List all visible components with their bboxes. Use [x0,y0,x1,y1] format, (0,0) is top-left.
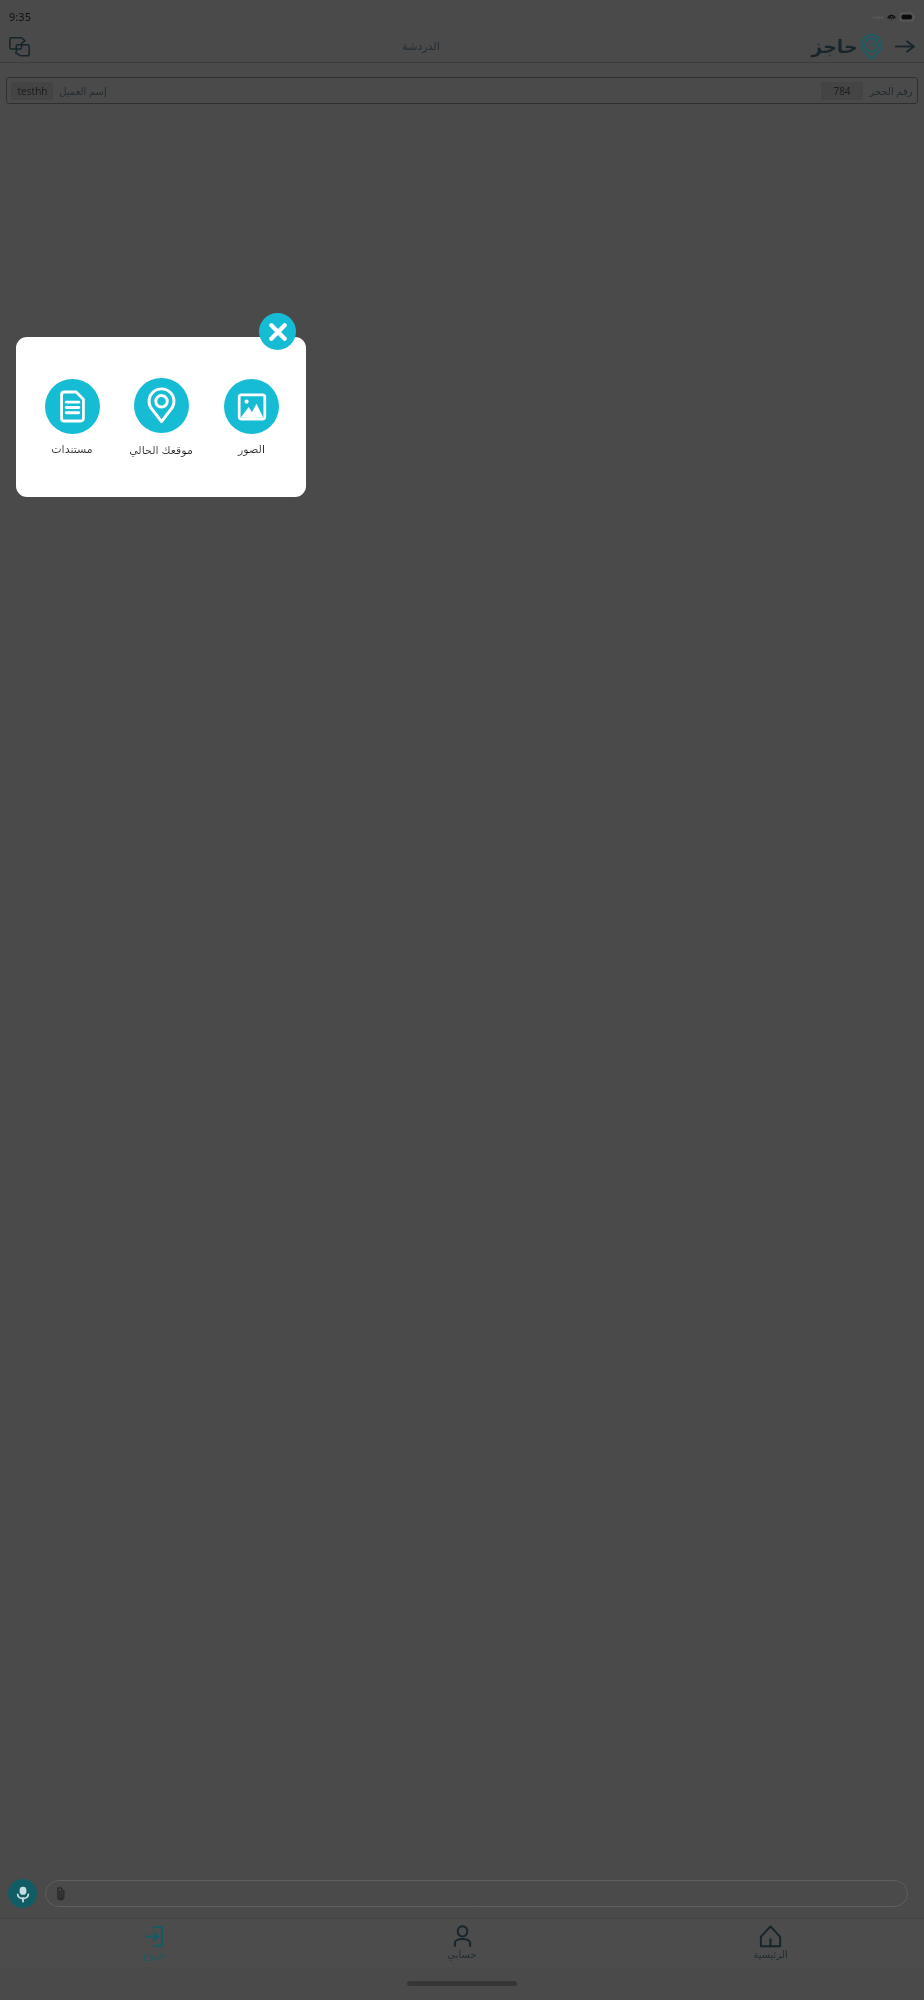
staticText: testhh [17,84,48,98]
staticText: الصور [238,443,265,456]
staticText: خروج [143,1949,166,1961]
staticText: موقعك الحالي [129,442,193,457]
button[interactable]: Voice message [8,1879,37,1908]
staticText: الدردشة [402,40,440,53]
staticText: مستندات [51,443,93,456]
staticText: رقم الحجز [869,84,913,98]
button[interactable]: testhh [6,77,918,104]
button[interactable]: Documents [32,379,112,456]
button[interactable]: خروج [0,1919,308,1967]
staticText: الرئيسية [753,1949,788,1961]
staticText: حسابي [447,1949,477,1961]
staticText: حاجز [811,35,858,57]
staticText: إسم العميل [59,84,107,98]
button[interactable]: Current location [121,378,201,457]
staticText: 784 [833,84,851,98]
button[interactable]: Attach file [53,1886,68,1901]
button[interactable]: Attach file [45,1880,908,1907]
staticText: 9:35 [9,9,31,24]
button[interactable]: الرئيسية [616,1919,924,1967]
button[interactable]: Change language [7,34,31,58]
button[interactable]: Close [259,313,296,350]
button[interactable]: Photos [211,379,291,456]
button[interactable]: حسابي [308,1919,616,1967]
button[interactable]: Back [892,34,916,58]
